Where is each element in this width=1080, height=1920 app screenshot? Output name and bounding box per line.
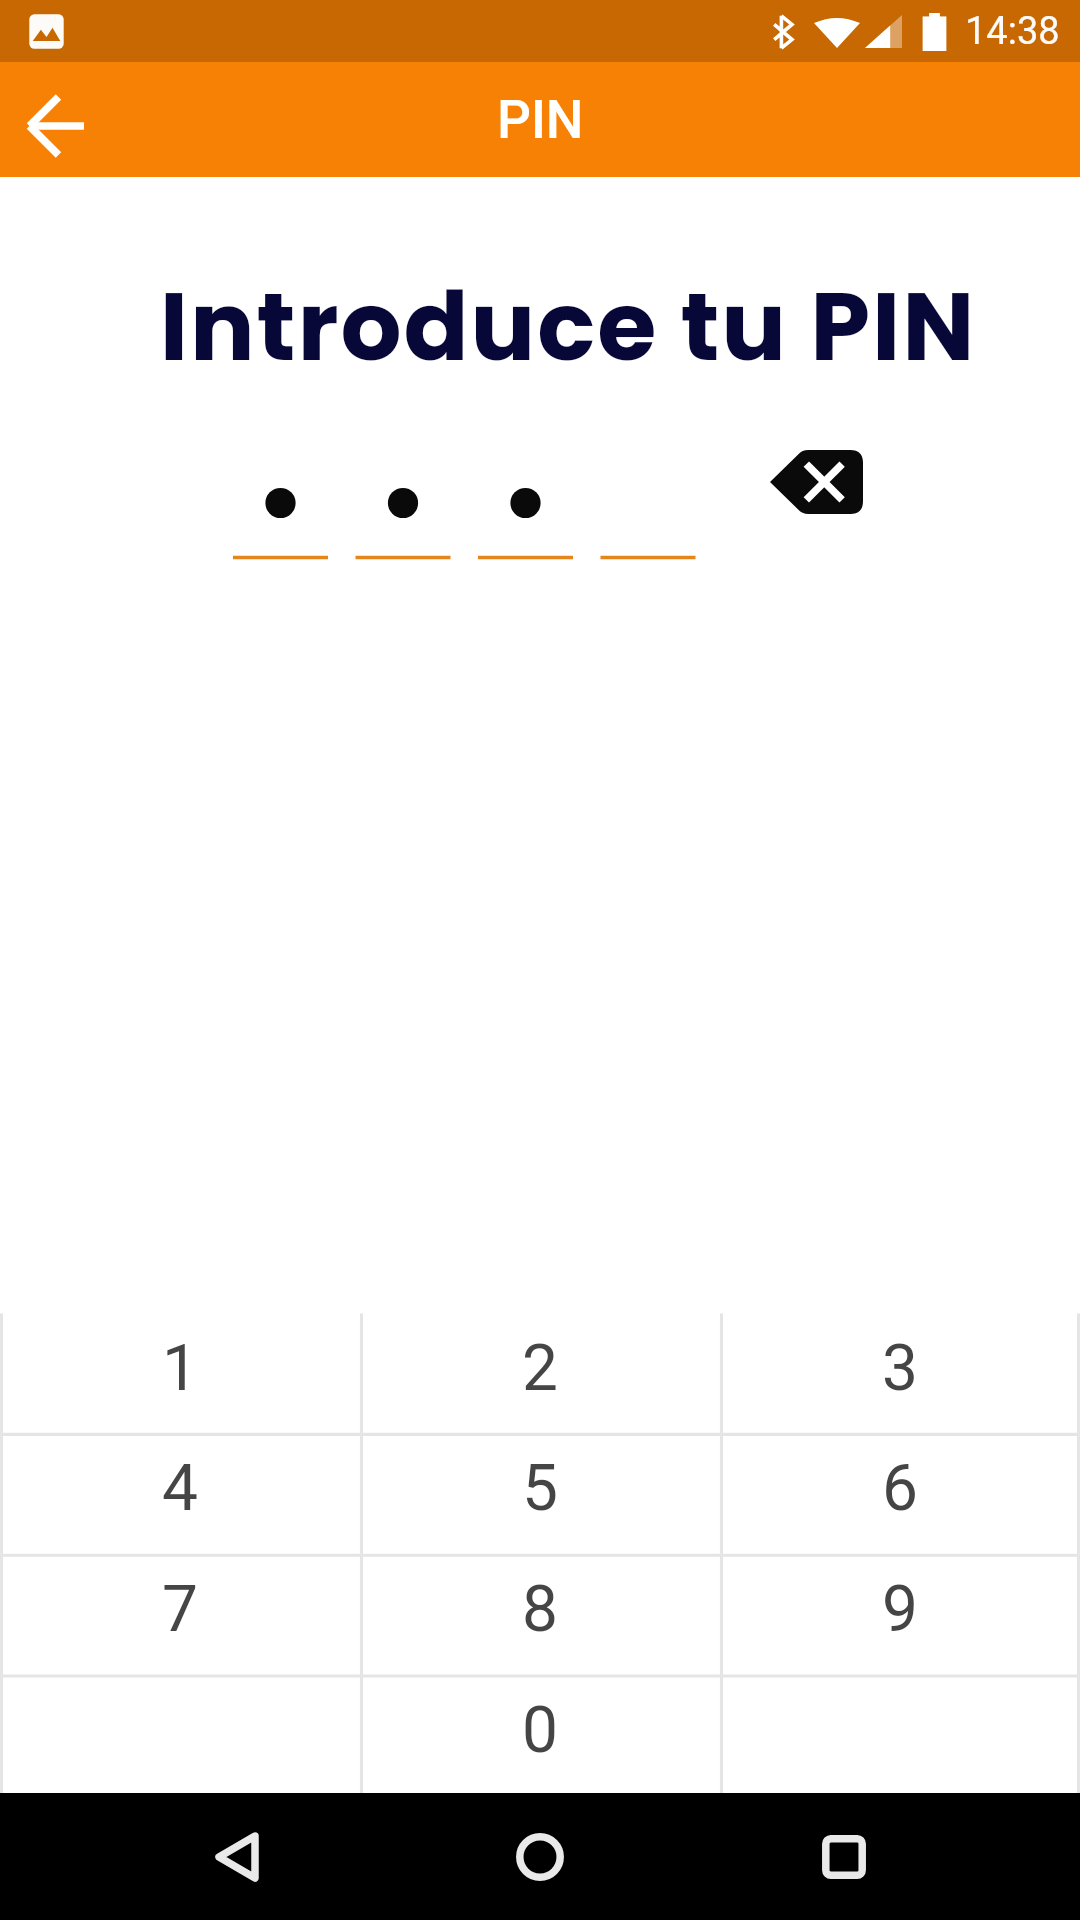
button[interactable]	[720, 1676, 1080, 1797]
button[interactable]: 7	[0, 1555, 360, 1676]
button[interactable]: Recent apps	[720, 1793, 1080, 1920]
button[interactable]: 8	[360, 1555, 720, 1676]
button[interactable]: 0	[360, 1676, 720, 1797]
staticText: 6	[882, 1451, 918, 1526]
button[interactable]: Navigate up	[0, 62, 115, 177]
staticText: Introduce tu PIN	[28, 259, 1080, 393]
button[interactable]: 2	[360, 1314, 720, 1435]
staticText: 0	[522, 1693, 558, 1768]
button[interactable]: 6	[720, 1434, 1080, 1555]
button[interactable]: Back	[0, 1793, 360, 1920]
button[interactable]: 1	[0, 1314, 360, 1435]
button[interactable]: Home	[360, 1793, 720, 1920]
staticText: 8	[522, 1572, 558, 1647]
staticText: 2	[522, 1331, 558, 1406]
staticText: 1	[162, 1331, 198, 1406]
button[interactable]: 5	[360, 1434, 720, 1555]
staticText: 5	[522, 1451, 558, 1526]
staticText: PIN	[497, 89, 584, 151]
staticText: 7	[162, 1572, 198, 1647]
button[interactable]: 4	[0, 1434, 360, 1555]
staticText: 14:38	[965, 9, 1060, 54]
button[interactable]: 3	[720, 1314, 1080, 1435]
button[interactable]	[0, 1676, 360, 1797]
staticText: 3	[882, 1331, 918, 1406]
button[interactable]: Delete digit	[758, 434, 874, 530]
staticText: 9	[882, 1572, 918, 1647]
staticText: 4	[162, 1451, 198, 1526]
button[interactable]: 9	[720, 1555, 1080, 1676]
